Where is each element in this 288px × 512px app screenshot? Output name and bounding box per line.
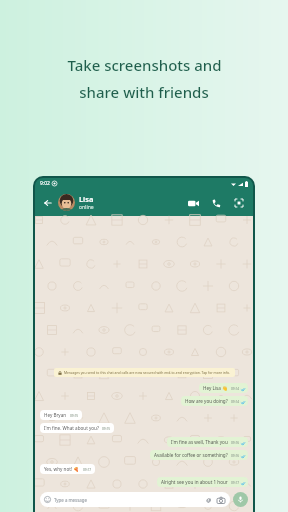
button[interactable]: Yes, why not! 🍕	[40, 464, 95, 474]
button[interactable]: How are you doing?	[181, 396, 248, 406]
staticText: Messages you send to this chat and calls…	[64, 370, 231, 375]
staticText: Available for coffee or something?	[154, 452, 228, 458]
staticText: 09:15	[102, 427, 111, 431]
staticText: 09:14	[231, 387, 240, 391]
button[interactable]: Video call	[185, 195, 201, 211]
button[interactable]: Back	[41, 196, 55, 210]
staticText: share with friends	[79, 82, 209, 102]
button[interactable]: Lisa	[58, 194, 185, 211]
button[interactable]: I'm fine as well, Thank you	[167, 437, 248, 447]
button[interactable]: Messages you send to this chat and calls…	[54, 368, 235, 377]
button[interactable]: I'm fine. What about you?	[40, 423, 114, 433]
staticText: 09:16	[231, 454, 240, 458]
button[interactable]: Type a message	[40, 492, 230, 507]
button[interactable]: Camera	[216, 495, 226, 505]
button[interactable]: Available for coffee or something?	[150, 450, 248, 460]
staticText: Lisa	[79, 194, 94, 204]
button[interactable]: More options	[231, 195, 247, 211]
staticText: 09:17	[231, 481, 240, 485]
staticText: online	[79, 204, 94, 211]
button[interactable]: Hey Bryan	[40, 410, 82, 420]
button[interactable]: Attach	[203, 495, 213, 505]
staticText: Hey Lisa 👋	[203, 385, 228, 391]
staticText: Type a message	[54, 497, 87, 503]
staticText: 09:14	[231, 400, 240, 404]
staticText: How are you doing?	[185, 398, 228, 404]
staticText: Hey Bryan	[44, 412, 67, 418]
staticText: Take screenshots and	[67, 55, 222, 75]
staticText: 09:17	[83, 468, 92, 472]
button[interactable]: Hey Lisa 👋	[199, 383, 248, 393]
staticText: 09:15	[70, 414, 79, 418]
button[interactable]: Record voice message	[233, 492, 248, 507]
staticText: 09:16	[231, 441, 240, 445]
staticText: 9:02	[40, 180, 50, 187]
staticText: Alright see you in about 1 hour	[161, 479, 228, 485]
staticText: I'm fine. What about you?	[44, 425, 99, 431]
staticText: Yes, why not! 🍕	[44, 466, 80, 472]
button[interactable]: Alright see you in about 1 hour	[157, 477, 248, 487]
button[interactable]: Voice call	[208, 195, 224, 211]
staticText: I'm fine as well, Thank you	[171, 439, 228, 445]
